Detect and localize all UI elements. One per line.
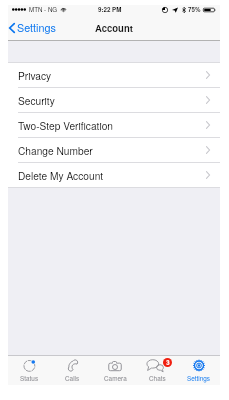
staticText: Status — [20, 374, 39, 383]
button[interactable]: Security — [8, 88, 220, 112]
staticText: Calls — [65, 374, 80, 383]
staticText: Account — [95, 21, 133, 35]
staticText: 75% — [188, 5, 201, 14]
button[interactable]: Settings — [8, 14, 62, 41]
staticText: Delete My Account — [18, 168, 104, 183]
staticText: Settings — [187, 374, 211, 383]
staticText: Change Number — [18, 143, 93, 158]
button[interactable]: Two-Step Verification — [8, 113, 220, 137]
button[interactable]: Privacy — [8, 63, 220, 87]
staticText: Camera — [104, 374, 127, 383]
staticText: 9:22 PM — [98, 5, 122, 14]
staticText: MTN - NG — [29, 5, 58, 14]
staticText: Privacy — [18, 68, 52, 83]
staticText: Two-Step Verification — [18, 118, 113, 133]
button[interactable]: Calls — [51, 356, 94, 385]
staticText: Security — [18, 93, 55, 108]
button[interactable]: Camera — [94, 356, 136, 385]
button[interactable]: Change Number — [8, 138, 220, 162]
button[interactable]: 3 — [136, 356, 178, 385]
button[interactable]: Status — [8, 356, 51, 385]
staticText: Settings — [17, 20, 56, 35]
staticText: 3 — [166, 358, 170, 367]
button[interactable]: Delete My Account — [8, 163, 220, 187]
staticText: Chats — [149, 374, 166, 383]
button[interactable]: Settings — [178, 356, 220, 385]
